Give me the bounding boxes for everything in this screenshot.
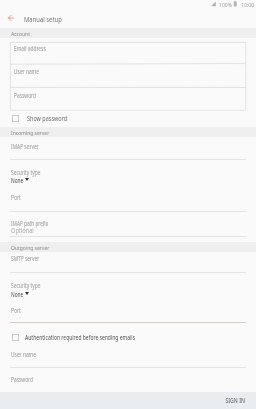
staticText: None bbox=[11, 176, 24, 185]
staticText: Email address bbox=[14, 44, 46, 53]
staticText: Incoming server bbox=[11, 129, 50, 137]
staticText: Manual setup bbox=[24, 14, 62, 25]
button[interactable]: Show password bbox=[12, 113, 77, 124]
staticText: User name bbox=[14, 67, 39, 76]
staticText: Optional bbox=[11, 226, 34, 235]
staticText: SMTP server bbox=[11, 254, 40, 263]
button[interactable]: SIGN IN bbox=[216, 392, 254, 408]
staticText: Security type bbox=[11, 168, 41, 177]
staticText: None bbox=[11, 290, 24, 299]
staticText: Port bbox=[11, 193, 21, 202]
staticText: Port bbox=[11, 306, 21, 315]
staticText: User name bbox=[11, 350, 36, 359]
staticText: Authentication required before sending e… bbox=[25, 333, 135, 342]
staticText: Outgoing server bbox=[11, 244, 50, 252]
staticText: 10:00 bbox=[241, 1, 255, 9]
staticText: Password bbox=[14, 91, 36, 100]
staticText: Show password bbox=[27, 114, 67, 123]
button[interactable]: Back bbox=[2, 9, 20, 27]
staticText: SIGN IN bbox=[225, 396, 245, 405]
staticText: 100% bbox=[219, 1, 232, 9]
staticText: Account bbox=[11, 30, 31, 38]
button[interactable]: Authentication required before sending e… bbox=[12, 332, 168, 343]
staticText: IMAP server bbox=[11, 142, 39, 151]
staticText: Security type bbox=[11, 281, 41, 290]
staticText: Password bbox=[11, 375, 33, 384]
staticText: IMAP path prefix bbox=[11, 219, 49, 228]
